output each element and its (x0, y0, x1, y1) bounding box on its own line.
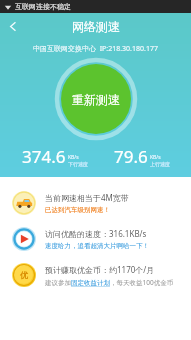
staticText: 中国互联网交换中心 IP:218.30.180.177 (33, 44, 158, 54)
button[interactable]: 优 (0, 257, 191, 293)
staticText: ，每天收益100优金币 (110, 278, 174, 287)
staticText: 预计赚取优金币：约1170个/月 (45, 264, 155, 275)
staticText: 79.6 (114, 145, 148, 168)
button[interactable]: Back (0, 13, 26, 39)
staticText: 374.6 (22, 145, 66, 168)
button[interactable]: 重新测速 (56, 59, 136, 139)
staticText: KB/s (150, 154, 161, 161)
staticText: 重新测速 (72, 92, 120, 107)
staticText: 访问优酷的速度：316.1KB/s (45, 228, 147, 239)
staticText: KB/s (68, 154, 79, 161)
staticText: 速度给力，追看超清大片啊哈一下！ (45, 242, 149, 250)
staticText: 优 (20, 270, 28, 280)
staticText: 已达到汽车级别网速！ (45, 206, 110, 214)
button[interactable]: 当前网速相当于4M宽带 (0, 185, 191, 221)
staticText: 建议参加 (45, 279, 71, 287)
staticText: 互联网连接不稳定 (15, 2, 71, 11)
staticText: 当前网速相当于4M宽带 (45, 192, 129, 203)
button[interactable]: 固定收益计划 (71, 279, 110, 287)
staticText: 网络测速 (72, 19, 120, 34)
staticText: 上行速度 (150, 161, 170, 167)
button[interactable]: 访问优酷的速度：316.1KB/s (0, 221, 191, 257)
staticText: 下行速度 (68, 161, 88, 167)
